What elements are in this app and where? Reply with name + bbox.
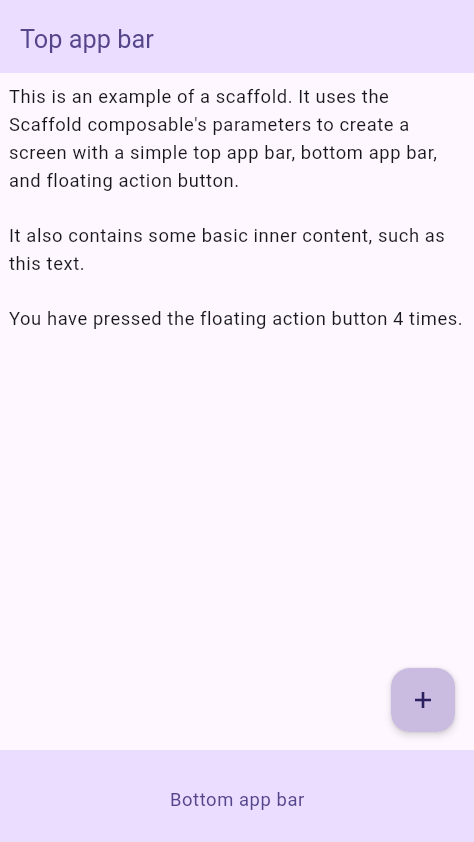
button[interactable] bbox=[391, 668, 455, 732]
staticText: Top app bar bbox=[20, 25, 154, 55]
staticText: Bottom app bar bbox=[170, 789, 305, 811]
button[interactable]: Bottom app bar bbox=[0, 750, 474, 842]
staticText: It also contains some basic inner conten… bbox=[9, 225, 446, 274]
button[interactable]: Top app bar bbox=[0, 0, 474, 73]
staticText: This is an example of a scaffold. It use… bbox=[9, 86, 438, 191]
staticText: You have pressed the floating action but… bbox=[9, 308, 464, 330]
